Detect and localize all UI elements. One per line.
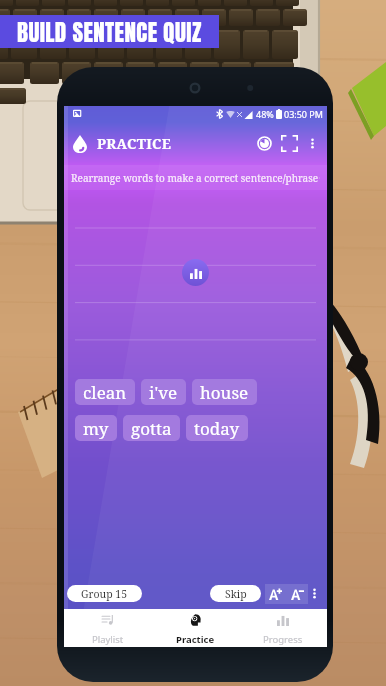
button[interactable]: Playlist: [64, 609, 151, 647]
button[interactable]: Progress: [239, 609, 327, 647]
staticText: house: [200, 381, 249, 404]
button[interactable]: Fullscreen: [281, 135, 298, 152]
button[interactable]: Timer: [257, 136, 272, 151]
staticText: Rearrange words to make a correct senten…: [71, 171, 319, 185]
button[interactable]: my: [75, 415, 117, 441]
button[interactable]: i've: [141, 379, 186, 405]
staticText: my: [83, 417, 109, 440]
staticText: Group 15: [81, 587, 128, 601]
button[interactable]: More options: [308, 587, 321, 600]
staticText: PRACTICE: [97, 134, 172, 153]
button[interactable]: Increase text size: [265, 584, 286, 604]
staticText: clean: [83, 381, 127, 404]
staticText: 03:50 PM: [284, 108, 323, 120]
button[interactable]: Progress: [182, 259, 209, 286]
staticText: Playlist: [92, 633, 124, 646]
button[interactable]: Settings: [319, 172, 320, 184]
staticText: gotta: [131, 417, 172, 440]
button[interactable]: More options: [306, 137, 319, 150]
button[interactable]: Practice: [151, 609, 239, 647]
button[interactable]: Skip: [210, 585, 261, 602]
button[interactable]: gotta: [123, 415, 180, 441]
staticText: Progress: [263, 633, 303, 646]
button[interactable]: Group 15: [67, 585, 142, 602]
button[interactable]: today: [186, 415, 248, 441]
button[interactable]: Decrease text size: [286, 584, 308, 604]
staticText: Skip: [225, 587, 247, 601]
staticText: 48%: [256, 108, 274, 120]
button[interactable]: clean: [75, 379, 135, 405]
staticText: i've: [149, 381, 178, 404]
staticText: Practice: [176, 633, 215, 646]
staticText: BUILD SENTENCE QUIZ: [17, 15, 202, 48]
staticText: today: [194, 417, 240, 440]
button[interactable]: house: [192, 379, 257, 405]
